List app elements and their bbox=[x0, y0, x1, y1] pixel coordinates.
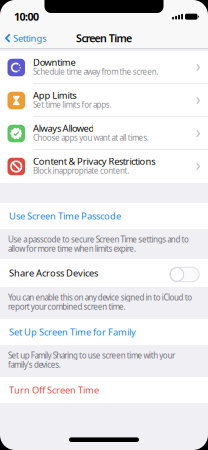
staticText: Share Across Devices bbox=[9, 267, 98, 279]
staticText: allow for more time when limits expire. bbox=[8, 243, 136, 254]
button[interactable]: Use Screen Time Passcode bbox=[0, 203, 208, 229]
staticText: Always Allowed bbox=[33, 122, 94, 134]
staticText: Use a passcode to secure Screen Time set… bbox=[8, 234, 189, 245]
staticText: Schedule time away from the screen. bbox=[33, 66, 158, 77]
button[interactable]: Always Allowed bbox=[0, 117, 208, 150]
staticText: Content & Privacy Restrictions bbox=[33, 155, 155, 167]
staticText: Settings bbox=[13, 32, 46, 44]
button[interactable]: Turn Off Screen Time bbox=[0, 377, 208, 403]
button[interactable]: Content & Privacy Restrictions bbox=[0, 150, 208, 183]
button[interactable]: Set Up Screen Time for Family bbox=[0, 319, 208, 345]
staticText: App Limits bbox=[33, 89, 76, 101]
button[interactable]: App Limits bbox=[0, 84, 208, 117]
staticText: Block inappropriate content. bbox=[33, 165, 129, 176]
staticText: Set up Family Sharing to use screen time… bbox=[8, 350, 175, 361]
button[interactable]: Share Across Devices bbox=[169, 265, 200, 281]
staticText: Choose apps you want at all times. bbox=[33, 132, 149, 143]
staticText: Use Screen Time Passcode bbox=[9, 210, 121, 222]
staticText: Downtime bbox=[33, 56, 76, 68]
staticText: family's devices. bbox=[8, 359, 61, 370]
staticText: Screen Time bbox=[76, 31, 132, 45]
staticText: Turn Off Screen Time bbox=[9, 384, 99, 396]
button[interactable]: Downtime bbox=[0, 51, 208, 84]
staticText: report your combined screen time. bbox=[8, 301, 126, 312]
staticText: 10:00 bbox=[14, 10, 39, 24]
button[interactable]: Back to Settings bbox=[0, 32, 46, 44]
staticText: Set time limits for apps. bbox=[33, 99, 111, 110]
staticText: Set Up Screen Time for Family bbox=[9, 326, 136, 338]
staticText: You can enable this on any device signed… bbox=[8, 292, 192, 303]
